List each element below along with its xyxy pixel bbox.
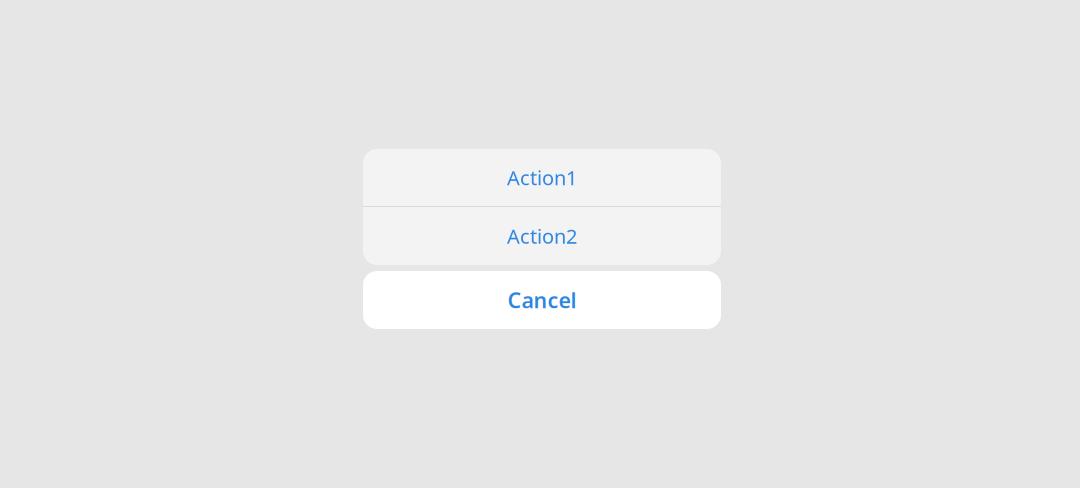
staticText: Cancel xyxy=(507,286,576,314)
button[interactable]: Action2 xyxy=(363,207,721,265)
staticText: Action1 xyxy=(507,164,577,191)
button[interactable]: Cancel xyxy=(363,271,721,329)
button[interactable]: Action1 xyxy=(363,149,721,206)
staticText: Action2 xyxy=(507,223,577,249)
